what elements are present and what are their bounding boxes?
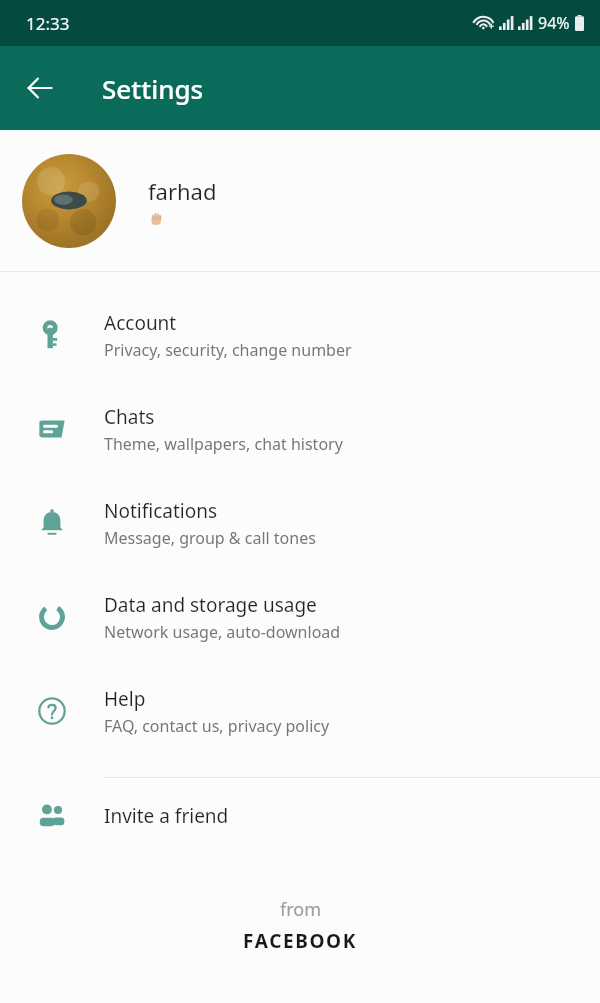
staticText: FAQ, contact us, privacy policy <box>104 715 330 737</box>
button[interactable]: Back <box>14 62 66 114</box>
staticText: Chats <box>104 404 155 430</box>
staticText: Settings <box>102 71 204 106</box>
staticText: 94% <box>538 12 570 34</box>
staticText: 12:33 <box>26 12 70 35</box>
staticText: Help <box>104 686 146 712</box>
button[interactable]: Chats <box>0 382 600 476</box>
button[interactable]: Help <box>0 664 600 758</box>
staticText: FACEBOOK <box>243 928 357 954</box>
staticText: Theme, wallpapers, chat history <box>104 433 343 455</box>
staticText: Data and storage usage <box>104 592 317 618</box>
staticText: Message, group & call tones <box>104 527 316 549</box>
staticText: from <box>280 897 321 922</box>
staticText: farhad <box>148 176 217 206</box>
button[interactable]: Account <box>0 288 600 382</box>
staticText: Network usage, auto-download <box>104 621 341 643</box>
staticText: Invite a friend <box>104 803 229 829</box>
button[interactable]: Notifications <box>0 476 600 570</box>
button[interactable]: farhad <box>0 130 600 271</box>
staticText: Privacy, security, change number <box>104 339 352 361</box>
button[interactable]: Data and storage usage <box>0 570 600 664</box>
staticText: Notifications <box>104 498 218 524</box>
button[interactable]: Invite a friend <box>0 778 600 853</box>
staticText: Account <box>104 310 177 336</box>
